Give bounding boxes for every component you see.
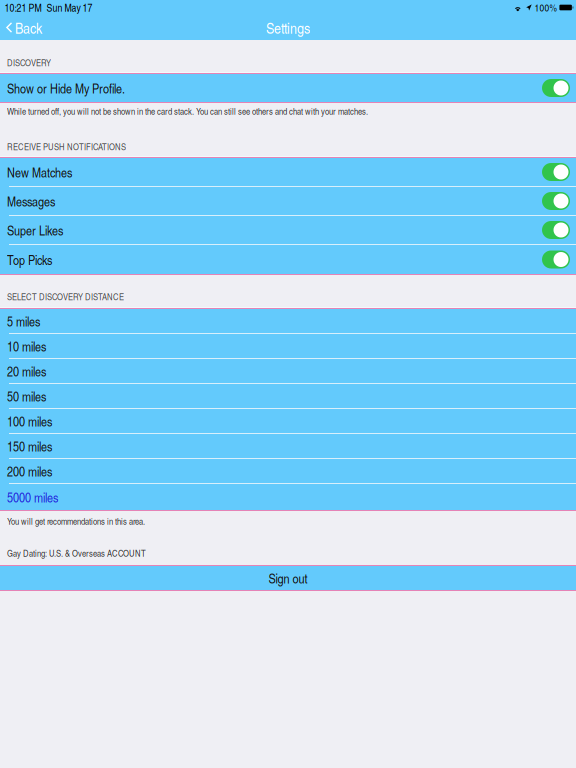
staticText: Messages <box>7 192 55 210</box>
staticText: 100% <box>534 1 556 14</box>
button[interactable]: Super Likes <box>0 216 576 244</box>
button[interactable]: 150 miles <box>0 434 576 458</box>
staticText: You will get recommendations in this are… <box>7 515 145 527</box>
staticText: While turned off, you will not be shown … <box>7 105 368 117</box>
button[interactable]: 10 miles <box>0 334 576 358</box>
button[interactable]: Sign out <box>0 566 576 590</box>
staticText: 100 miles <box>7 412 52 430</box>
staticText: 10:21 PM <box>4 0 41 15</box>
button[interactable]: Show or Hide My Profile. <box>0 74 576 102</box>
staticText: Settings <box>266 17 310 38</box>
staticText: Back <box>15 17 42 38</box>
button[interactable]: 200 miles <box>0 459 576 483</box>
button[interactable]: 20 miles <box>0 359 576 383</box>
button[interactable]: 5 miles <box>0 309 576 333</box>
staticText: Super Likes <box>7 221 63 239</box>
button[interactable]: New Matches <box>0 158 576 186</box>
staticText: DISCOVERY <box>7 56 51 69</box>
staticText: Show or Hide My Profile. <box>7 79 125 97</box>
staticText: 5 miles <box>7 312 40 330</box>
button[interactable]: 5000 miles <box>0 484 576 510</box>
staticText: RECEIVE PUSH NOTIFICATIONS <box>7 140 126 153</box>
button[interactable]: 50 miles <box>0 384 576 408</box>
staticText: Sign out <box>268 569 307 587</box>
staticText: Gay Dating: U.S. & Overseas ACCOUNT <box>7 547 146 559</box>
staticText: 200 miles <box>7 462 52 480</box>
staticText: 150 miles <box>7 437 52 455</box>
staticText: 10 miles <box>7 337 46 355</box>
staticText: SELECT DISCOVERY DISTANCE <box>7 290 124 303</box>
staticText: Sun May 17 <box>46 0 92 15</box>
staticText: 5000 miles <box>7 488 58 506</box>
staticText: 20 miles <box>7 362 46 380</box>
staticText: Top Picks <box>7 250 52 269</box>
button[interactable]: 100 miles <box>0 409 576 433</box>
button[interactable]: Top Picks <box>0 245 576 274</box>
staticText: 50 miles <box>7 387 46 405</box>
button[interactable]: Messages <box>0 187 576 215</box>
staticText: New Matches <box>7 163 72 181</box>
button[interactable]: Back <box>0 15 50 40</box>
